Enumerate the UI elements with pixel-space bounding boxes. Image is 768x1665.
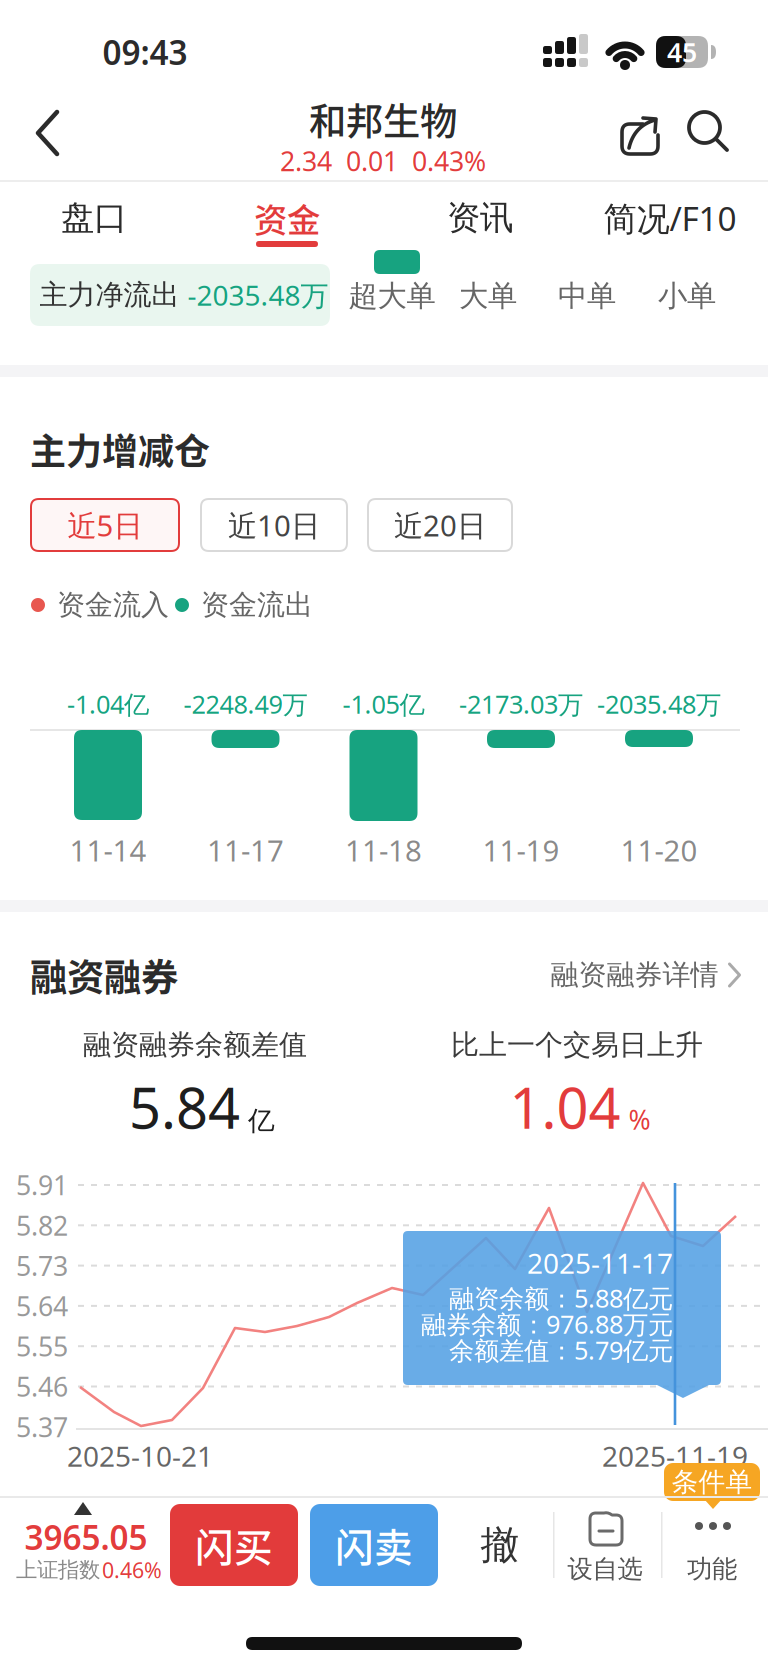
staticText: 5.91 <box>16 1167 68 1203</box>
staticText: 5.73 <box>16 1248 68 1283</box>
staticText: 资金流入 <box>57 588 169 622</box>
staticText: 闪买 <box>195 1517 273 1573</box>
staticText: -1.04亿 <box>67 687 149 721</box>
button[interactable]: 近5日 <box>30 498 180 552</box>
staticText: 近10日 <box>228 505 320 544</box>
staticText: 设自选 <box>567 1553 642 1584</box>
staticText: -2035.48万 <box>187 276 328 314</box>
staticText: 简况/F10 <box>603 196 736 240</box>
button[interactable] <box>609 106 669 166</box>
staticText: 11-17 <box>207 830 284 869</box>
staticText: 中单 <box>558 278 616 314</box>
staticText: 5.46 <box>16 1369 68 1404</box>
staticText: 2025-11-19 <box>602 1437 748 1475</box>
staticText: 近5日 <box>67 505 142 544</box>
staticText: -2173.03万 <box>459 687 583 721</box>
staticText: 融资融券余额差值 <box>83 1028 307 1062</box>
button[interactable]: 闪买 <box>170 1504 298 1586</box>
staticText: 功能 <box>687 1553 737 1584</box>
button[interactable]: 融资融券详情 <box>550 950 741 1000</box>
staticText: 近20日 <box>394 505 486 544</box>
staticText: 资金 <box>254 194 320 242</box>
button[interactable]: 闪卖 <box>310 1504 438 1586</box>
staticText: 撤 <box>480 1521 519 1569</box>
staticText: 1.04 <box>509 1070 620 1144</box>
staticText: -2035.48万 <box>597 687 721 721</box>
staticText: 资讯 <box>447 197 513 238</box>
staticText: 比上一个交易日上升 <box>451 1028 703 1062</box>
staticText: 11-20 <box>620 830 697 869</box>
staticText: 融券余额：976.88万元 <box>421 1307 673 1341</box>
staticText: 3965.05 <box>24 1515 147 1559</box>
button[interactable]: 撤 <box>455 1500 545 1590</box>
staticText: 11-14 <box>69 830 146 869</box>
button[interactable]: 盘口 <box>29 183 159 253</box>
staticText: 2.34 0.01 0.43% <box>280 143 486 179</box>
staticText: 11-18 <box>345 830 422 869</box>
button[interactable]: 设自选 <box>0 0 768 1665</box>
staticText: 2025-10-21 <box>67 1437 213 1475</box>
staticText: 融资融券详情 <box>550 958 718 992</box>
staticText: 条件单 <box>671 1466 752 1498</box>
staticText: -2248.49万 <box>183 687 307 721</box>
staticText: 11-19 <box>482 830 559 869</box>
staticText: 闪卖 <box>335 1517 413 1573</box>
staticText: 5.84 <box>129 1070 240 1144</box>
staticText: % <box>628 1102 650 1137</box>
staticText: 45 <box>667 34 697 70</box>
staticText: 小单 <box>658 278 716 314</box>
button[interactable] <box>19 104 95 164</box>
staticText: 5.55 <box>16 1328 68 1364</box>
button[interactable]: 近20日 <box>367 498 513 552</box>
button[interactable] <box>681 108 741 168</box>
button[interactable]: 功能 <box>0 0 768 1665</box>
staticText: 0.46% <box>102 1556 162 1584</box>
staticText: 盘口 <box>61 197 127 238</box>
staticText: 余额差值：5.79亿元 <box>449 1333 673 1367</box>
button[interactable]: 资讯 <box>415 183 545 253</box>
staticText: 2025-11-17 <box>527 1244 673 1282</box>
button[interactable]: 3965.05 <box>0 0 768 1665</box>
staticText: 主力净流出 <box>39 278 179 312</box>
staticText: 上证指数 <box>16 1557 100 1583</box>
staticText: 融资余额：5.88亿元 <box>449 1281 673 1315</box>
staticText: 亿 <box>248 1104 275 1137</box>
staticText: -1.05亿 <box>342 687 424 721</box>
staticText: 5.37 <box>16 1409 68 1444</box>
staticText: 5.82 <box>16 1208 68 1243</box>
staticText: 和邦生物 <box>309 92 457 146</box>
staticText: 大单 <box>459 278 517 314</box>
button[interactable]: 简况/F10 <box>550 183 768 253</box>
button[interactable]: 近10日 <box>200 498 348 552</box>
staticText: 5.64 <box>16 1288 68 1324</box>
staticText: 超大单 <box>348 278 435 314</box>
staticText: 09:43 <box>102 30 187 74</box>
staticText: 主力增减仓 <box>30 423 210 475</box>
button[interactable]: 资金 <box>222 183 352 253</box>
button[interactable]: 条件单 <box>664 1463 760 1501</box>
staticText: 融资融券 <box>30 948 178 1002</box>
staticText: 资金流出 <box>201 588 313 622</box>
